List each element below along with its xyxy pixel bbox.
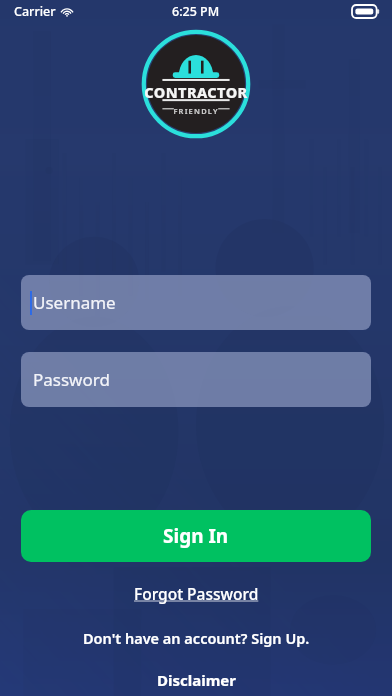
button[interactable]: Password: [21, 352, 371, 407]
button[interactable]: Sign In: [21, 510, 371, 562]
staticText: Password: [33, 368, 110, 391]
button[interactable]: Don't have an account? Sign Up.: [75, 625, 318, 651]
staticText: Disclaimer: [157, 670, 236, 690]
staticText: Sign In: [163, 523, 229, 549]
staticText: Don't have an account? Sign Up.: [83, 628, 310, 648]
staticText: Username: [33, 291, 116, 314]
staticText: Carrier: [14, 3, 56, 20]
button[interactable]: Forgot Password: [126, 580, 267, 607]
staticText: FRIENDLY: [173, 106, 219, 116]
button[interactable]: Username: [21, 275, 371, 330]
other: Contractor Friendly logo: [140, 28, 252, 140]
staticText: 6:25 PM: [172, 3, 220, 20]
staticText: Forgot Password: [134, 583, 259, 604]
button[interactable]: Disclaimer: [147, 667, 246, 693]
staticText: CONTRACTOR: [144, 82, 248, 102]
